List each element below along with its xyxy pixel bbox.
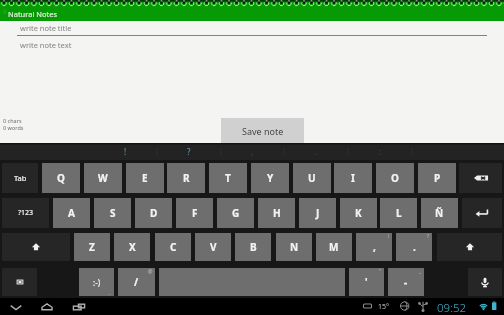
staticText: H [273, 206, 281, 220]
button[interactable]: Q [42, 163, 80, 193]
button[interactable]: ' [349, 268, 384, 296]
button[interactable]: P [418, 163, 456, 193]
staticText: Natural Notes [8, 9, 58, 19]
staticText: I [351, 171, 355, 185]
staticText: 15° [378, 302, 390, 312]
staticText: B [250, 240, 257, 254]
staticText: G [232, 206, 240, 220]
button[interactable]: K [340, 198, 377, 228]
staticText: J [316, 206, 320, 220]
button[interactable]: W [84, 163, 122, 193]
staticText: C [170, 240, 177, 254]
button[interactable]: V [195, 233, 231, 261]
staticText: ! [388, 233, 390, 240]
staticText: K [355, 206, 362, 220]
button[interactable]: D [135, 198, 172, 228]
button[interactable]: :-) [79, 268, 114, 296]
staticText: Q [57, 171, 65, 185]
button[interactable]: C [155, 233, 191, 261]
staticText: . [413, 240, 416, 254]
button[interactable]: Save note [221, 118, 304, 143]
button[interactable]: O [376, 163, 414, 193]
button[interactable]: , [221, 143, 283, 160]
button[interactable]: Switch keyboard [2, 268, 37, 296]
button[interactable]: F [176, 198, 213, 228]
staticText: ? [187, 146, 191, 157]
staticText: . [315, 146, 318, 157]
button[interactable]: Ñ [421, 198, 458, 228]
button[interactable]: L [380, 198, 417, 228]
button[interactable]: Shift [437, 233, 502, 261]
staticText: 0 chars [3, 117, 22, 124]
staticText: W [98, 171, 108, 185]
staticText: F [192, 206, 198, 220]
staticText: O [391, 171, 399, 185]
button[interactable]: E [126, 163, 164, 193]
staticText: ! [124, 146, 127, 157]
staticText: :-) [93, 277, 101, 288]
button[interactable]: / [118, 268, 155, 296]
button[interactable]: Enter [462, 198, 502, 228]
staticText: 09:52 [437, 300, 467, 315]
button[interactable]: H [258, 198, 295, 228]
button[interactable]: Shift [2, 233, 70, 261]
staticText: U [308, 171, 316, 185]
button[interactable]: ?123 [2, 198, 49, 228]
staticText: ' [365, 275, 368, 289]
button[interactable]: . [285, 143, 347, 160]
button[interactable]: J [299, 198, 336, 228]
button[interactable]: Tab [2, 163, 38, 193]
button[interactable]: B [235, 233, 271, 261]
staticText: Z [89, 240, 95, 254]
staticText: P [434, 171, 441, 185]
button[interactable]: Recent apps [69, 298, 89, 315]
button[interactable]: Z [74, 233, 110, 261]
staticText: T [225, 171, 231, 185]
staticText: , [251, 146, 254, 157]
button[interactable]: N [276, 233, 312, 261]
staticText: R [183, 171, 190, 185]
button[interactable]: M [316, 233, 352, 261]
button[interactable]: , [356, 233, 392, 261]
button[interactable]: . [396, 233, 432, 261]
staticText: V [210, 240, 217, 254]
staticText: S [110, 206, 116, 220]
staticText: - [404, 275, 408, 289]
button[interactable]: ! [94, 143, 156, 160]
button[interactable]: S [94, 198, 131, 228]
button[interactable]: I [334, 163, 372, 193]
staticText: A [68, 206, 75, 220]
staticText: write note title [20, 23, 72, 33]
staticText: ... [108, 291, 112, 296]
button[interactable]: - [388, 268, 424, 296]
staticText: " [379, 268, 382, 275]
button[interactable]: Voice input [468, 268, 502, 296]
button[interactable]: G [217, 198, 254, 228]
button[interactable]: Home [37, 298, 57, 315]
button[interactable]: : [349, 143, 411, 160]
button[interactable]: A [53, 198, 90, 228]
button[interactable]: T [209, 163, 247, 193]
staticText: ? [427, 233, 430, 240]
staticText: N [290, 240, 299, 254]
button[interactable]: ? [158, 143, 220, 160]
staticText: ?123 [18, 208, 34, 218]
staticText: D [150, 206, 158, 220]
button[interactable]: Y [251, 163, 289, 193]
staticText: : [379, 146, 382, 157]
button[interactable]: U [293, 163, 331, 193]
staticText: X [129, 240, 136, 254]
button[interactable]: Back [6, 298, 26, 315]
button[interactable]: X [114, 233, 150, 261]
button[interactable]: R [167, 163, 205, 193]
staticText: L [396, 206, 402, 220]
staticText: write note text [20, 40, 72, 50]
staticText: / [134, 275, 139, 289]
staticText: Ñ [435, 206, 444, 220]
button[interactable]: Backspace [459, 163, 502, 193]
staticText: Save note [242, 125, 284, 137]
staticText: E [142, 171, 148, 185]
staticText: M [329, 240, 339, 254]
staticText: 0 words [3, 124, 24, 131]
